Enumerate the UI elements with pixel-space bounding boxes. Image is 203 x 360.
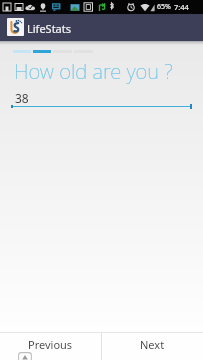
button[interactable]: Next <box>102 333 203 360</box>
button[interactable]: LifeStats logo <box>7 18 24 36</box>
staticText: 65% <box>157 2 171 12</box>
staticText: 7:44 <box>174 2 189 12</box>
button[interactable]: Show keyboard <box>18 352 32 360</box>
staticText: Previous <box>28 337 73 352</box>
staticText: 38 <box>15 90 29 106</box>
staticText: How old are you ? <box>14 57 173 85</box>
staticText: Next <box>140 337 165 352</box>
button[interactable]: Previous <box>0 333 101 360</box>
staticText: LifeStats <box>27 21 72 36</box>
button[interactable]: Age input field <box>11 88 192 107</box>
